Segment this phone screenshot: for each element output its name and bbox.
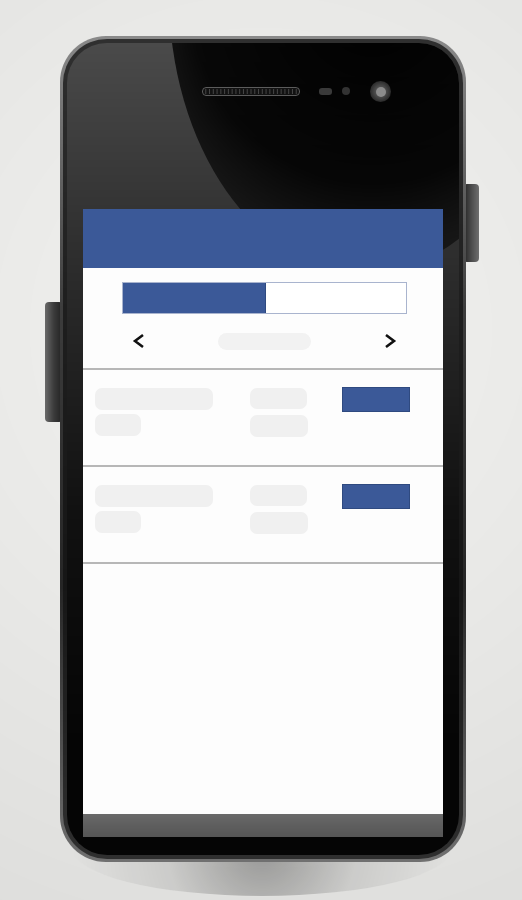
button[interactable]: Previous [122,324,156,358]
button[interactable]: Action [83,467,443,562]
button[interactable]: Action [83,370,443,465]
button[interactable]: Action [342,484,410,509]
button[interactable]: Action [342,387,410,412]
button[interactable] [122,282,407,314]
button[interactable]: Next [373,324,407,358]
